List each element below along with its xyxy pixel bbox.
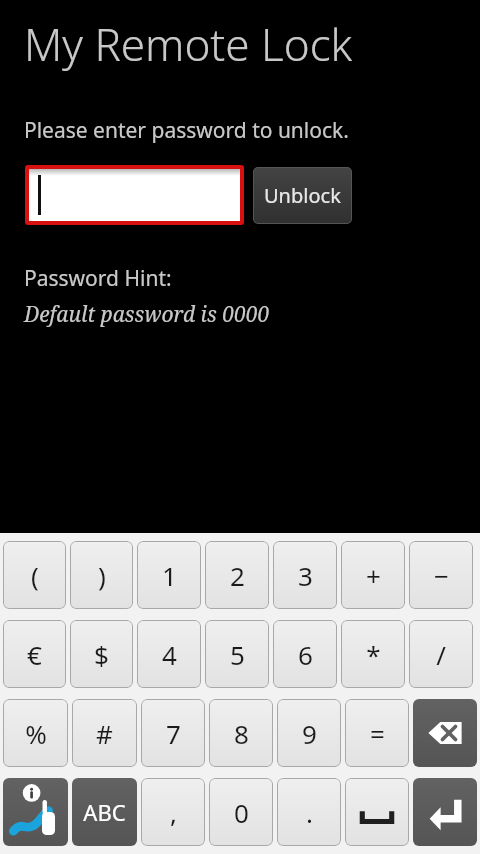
button[interactable]: Space [345, 778, 409, 846]
button[interactable]: + [341, 541, 405, 609]
button[interactable]: 1 [137, 541, 201, 609]
staticText: Unblock [264, 182, 341, 209]
button[interactable]: 5 [205, 620, 269, 688]
button[interactable]: ABC [72, 778, 137, 846]
button[interactable]: * [341, 620, 405, 688]
staticText: + [366, 558, 381, 593]
staticText: Please enter password to unlock. [24, 116, 349, 145]
staticText: ABC [83, 797, 126, 827]
staticText: 6 [298, 637, 313, 672]
staticText: 5 [230, 637, 245, 672]
button[interactable]: / [409, 620, 473, 688]
staticText: 8 [234, 716, 249, 751]
button[interactable]: − [409, 541, 473, 609]
button[interactable]: 8 [209, 699, 273, 767]
button[interactable]: $ [70, 620, 133, 688]
button[interactable]: Enter [413, 778, 477, 846]
button[interactable]: 7 [141, 699, 205, 767]
staticText: − [434, 558, 449, 593]
button[interactable]: Backspace [413, 699, 477, 767]
staticText: * [366, 637, 381, 672]
staticText: % [25, 716, 47, 751]
button[interactable]: = [345, 699, 409, 767]
staticText: Default password is 0000 [24, 300, 270, 329]
staticText: 3 [298, 558, 313, 593]
button[interactable]: 0 [209, 778, 273, 846]
button[interactable]: ) [70, 541, 133, 609]
staticText: 1 [162, 558, 177, 593]
button[interactable]: Input method [3, 778, 68, 846]
staticText: Password Hint: [24, 264, 172, 293]
staticText: 9 [302, 716, 317, 751]
staticText: ) [98, 558, 106, 593]
staticText: My Remote Lock [24, 14, 353, 74]
staticText: # [96, 716, 113, 751]
button[interactable]: % [3, 699, 68, 767]
button[interactable]: 9 [277, 699, 341, 767]
button[interactable]: . [277, 778, 341, 846]
staticText: $ [94, 637, 109, 672]
button[interactable]: 3 [273, 541, 337, 609]
staticText: 4 [162, 637, 177, 672]
button[interactable]: # [72, 699, 137, 767]
button[interactable]: € [3, 620, 66, 688]
button[interactable]: 2 [205, 541, 269, 609]
staticText: € [27, 637, 42, 672]
button[interactable]: ( [3, 541, 66, 609]
staticText: / [436, 637, 446, 672]
staticText: 0 [234, 795, 249, 830]
staticText: , [170, 795, 177, 830]
staticText: = [370, 716, 385, 751]
button[interactable]: , [141, 778, 205, 846]
button[interactable]: 6 [273, 620, 337, 688]
staticText: ( [31, 558, 39, 593]
staticText: 7 [166, 716, 181, 751]
button[interactable] [29, 169, 240, 221]
button[interactable]: Unblock [253, 167, 352, 224]
button[interactable]: 4 [137, 620, 201, 688]
staticText: 2 [230, 558, 245, 593]
staticText: . [306, 795, 313, 830]
